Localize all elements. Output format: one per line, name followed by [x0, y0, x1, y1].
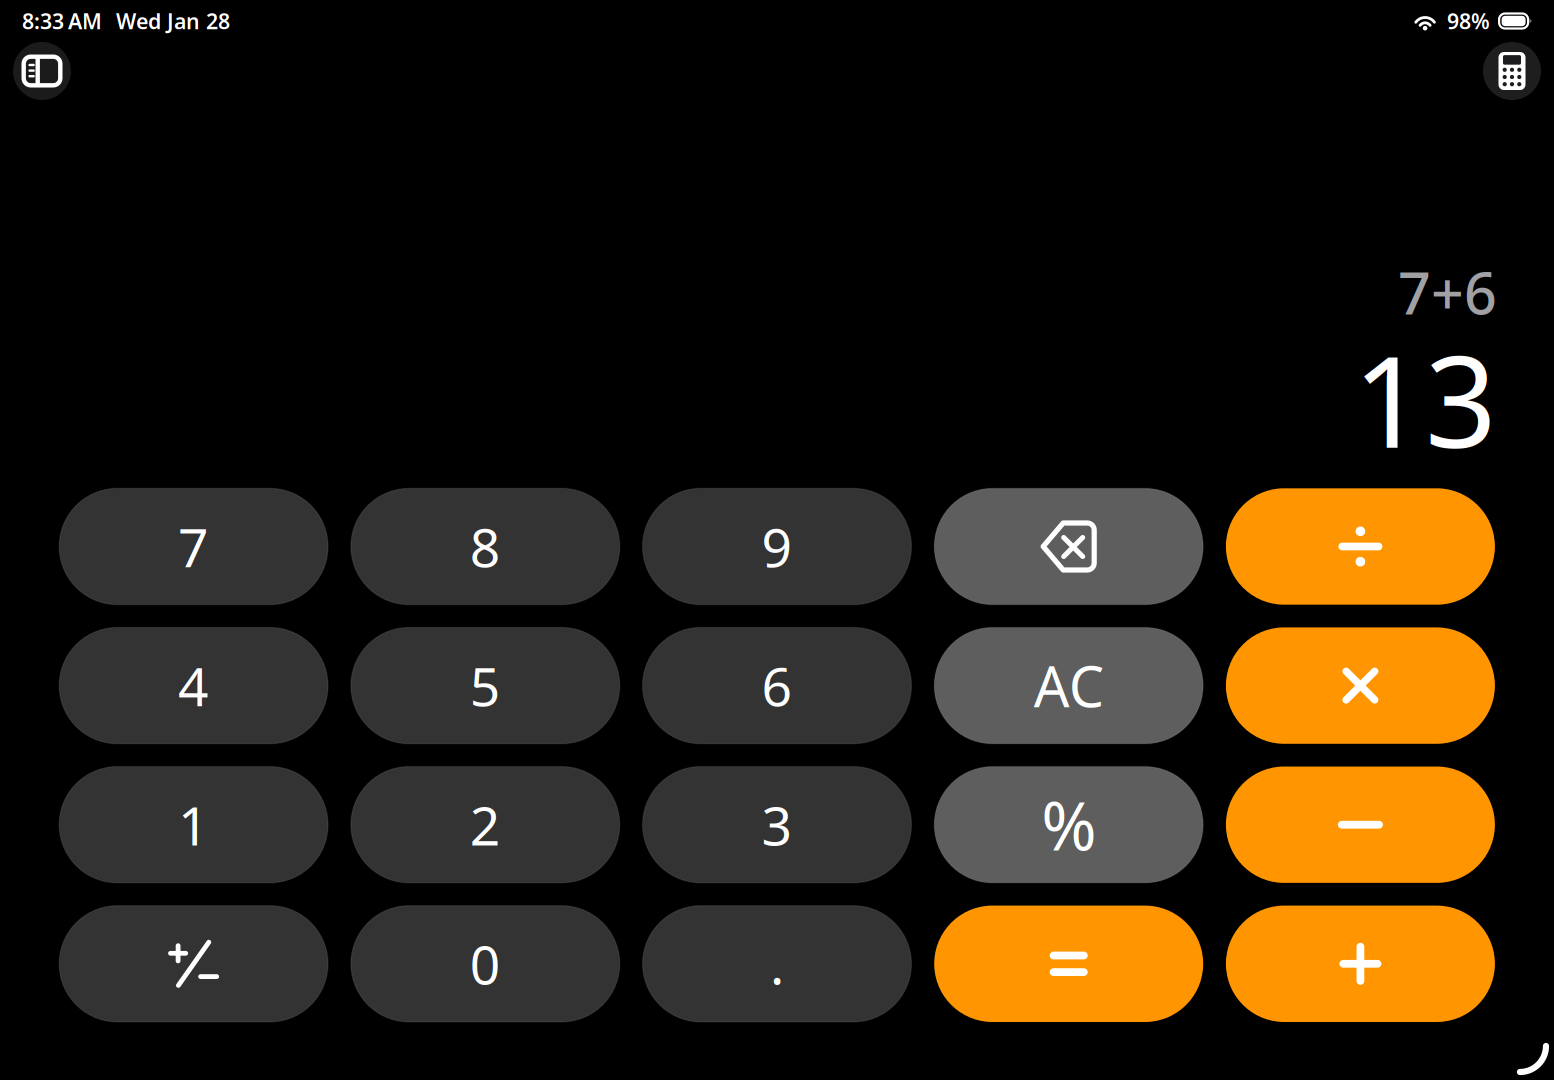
staticText: %: [1041, 780, 1096, 869]
button[interactable]: .: [642, 906, 911, 1022]
staticText: 6: [761, 650, 792, 721]
button[interactable]: 2: [351, 766, 620, 883]
button[interactable]: Plus Minus: [59, 906, 328, 1022]
staticText: 8:33 AM: [22, 7, 102, 35]
button[interactable]: Add: [1226, 906, 1495, 1022]
staticText: 7+6: [1398, 254, 1497, 330]
button[interactable]: 0: [351, 906, 620, 1022]
button[interactable]: Show Sidebar: [13, 42, 71, 100]
staticText: 1: [178, 789, 209, 860]
button[interactable]: 6: [642, 627, 911, 744]
staticText: 8: [470, 511, 501, 582]
button[interactable]: Calculator Modes: [1483, 42, 1541, 100]
button[interactable]: Multiply: [1226, 627, 1495, 744]
button[interactable]: Subtract: [1226, 766, 1495, 883]
staticText: 98%: [1447, 7, 1490, 35]
staticText: .: [770, 928, 784, 999]
staticText: AC: [1034, 648, 1104, 723]
staticText: Wed Jan 28: [116, 7, 230, 35]
button[interactable]: 3: [642, 766, 911, 883]
button[interactable]: Divide: [1226, 488, 1495, 605]
button[interactable]: 1: [59, 766, 328, 883]
button[interactable]: %: [934, 766, 1203, 883]
staticText: 3: [761, 789, 792, 860]
button[interactable]: 5: [351, 627, 620, 744]
staticText: 5: [470, 650, 501, 721]
button[interactable]: 9: [642, 488, 911, 605]
button[interactable]: 7: [59, 488, 328, 605]
button[interactable]: 4: [59, 627, 328, 744]
button[interactable]: 8: [351, 488, 620, 605]
staticText: 2: [470, 789, 501, 860]
staticText: 4: [178, 650, 209, 721]
staticText: 7: [178, 511, 209, 582]
staticText: 9: [761, 511, 792, 582]
button[interactable]: Delete: [934, 488, 1203, 605]
staticText: 13: [1353, 316, 1497, 482]
staticText: 0: [470, 928, 501, 999]
button[interactable]: Equals: [934, 906, 1203, 1022]
button[interactable]: AC: [934, 627, 1203, 744]
